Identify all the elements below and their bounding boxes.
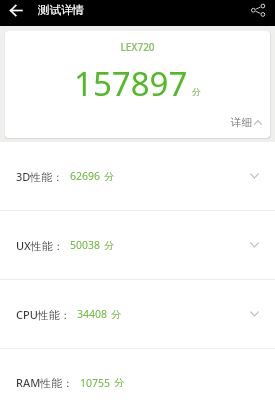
staticText: 分 (104, 239, 114, 252)
button[interactable]: UX性能： (0, 211, 275, 279)
button[interactable]: Share (247, 0, 269, 20)
button[interactable]: RAM性能： (0, 349, 275, 416)
staticText: 分 (114, 376, 124, 389)
staticText: 34408 (77, 307, 108, 321)
staticText: 62696 (70, 169, 101, 183)
staticText: 分 (111, 308, 121, 321)
staticText: 测试详情 (38, 3, 84, 17)
button[interactable]: CPU性能： (0, 280, 275, 348)
button[interactable]: 详细 (231, 116, 270, 138)
staticText: 分 (192, 87, 201, 98)
staticText: 50038 (70, 238, 101, 252)
staticText: CPU性能： (16, 307, 71, 322)
button[interactable]: 3D性能： (0, 142, 275, 210)
staticText: UX性能： (16, 238, 64, 253)
staticText: 157897 (74, 61, 188, 106)
staticText: 详细 (231, 116, 252, 129)
staticText: RAM性能： (16, 375, 74, 390)
staticText: LEX720 (5, 40, 270, 54)
staticText: 10755 (80, 376, 111, 390)
staticText: 分 (104, 170, 114, 183)
staticText: 3D性能： (16, 169, 64, 184)
button[interactable]: Back (5, 0, 27, 20)
